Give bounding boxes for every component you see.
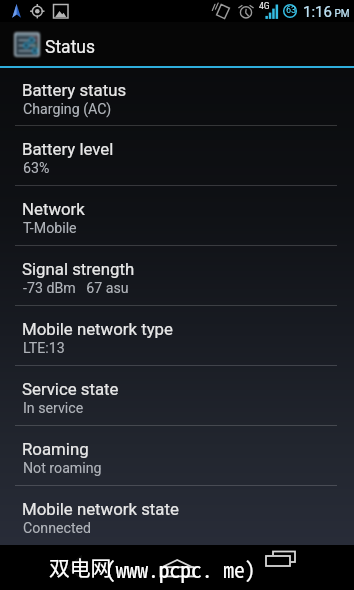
staticText: Status <box>45 37 96 58</box>
staticText: Battery status <box>22 80 127 100</box>
button[interactable]: Battery level <box>0 126 354 186</box>
staticText: Not roaming <box>23 460 102 477</box>
staticText: LTE:13 <box>23 340 65 357</box>
staticText: 63 <box>286 5 297 16</box>
button[interactable]: Service state <box>0 366 354 426</box>
button[interactable]: Back <box>50 545 98 590</box>
staticText: Connected <box>23 520 92 537</box>
staticText: Network <box>22 199 85 219</box>
button[interactable]: Network <box>0 186 354 246</box>
staticText: 双电网 <box>49 552 112 582</box>
staticText: Mobile network type <box>22 319 173 339</box>
staticText: T-Mobile <box>23 220 77 237</box>
staticText: Service state <box>22 379 119 399</box>
staticText: 1:16 <box>303 3 332 21</box>
button[interactable]: Mobile network state <box>0 486 354 546</box>
staticText: Mobile network state <box>22 499 179 519</box>
button[interactable]: Home <box>150 545 204 590</box>
button[interactable]: Battery status <box>0 68 354 126</box>
staticText: 4G <box>259 1 270 11</box>
staticText: (www.pcpc. me) <box>105 553 256 584</box>
staticText: Charging (AC) <box>23 101 112 118</box>
staticText: In service <box>23 400 84 417</box>
button[interactable]: Roaming <box>0 426 354 486</box>
button[interactable]: Recent apps <box>258 545 304 590</box>
staticText: Roaming <box>22 439 89 459</box>
staticText: Battery level <box>22 139 114 159</box>
staticText: PM <box>332 8 350 20</box>
staticText: -73 dBm 67 asu <box>23 280 129 297</box>
button[interactable]: Signal strength <box>0 246 354 306</box>
button[interactable]: Mobile network type <box>0 306 354 366</box>
staticText: Signal strength <box>22 259 135 279</box>
button[interactable]: Status <box>0 22 354 66</box>
staticText: 63% <box>23 160 50 177</box>
